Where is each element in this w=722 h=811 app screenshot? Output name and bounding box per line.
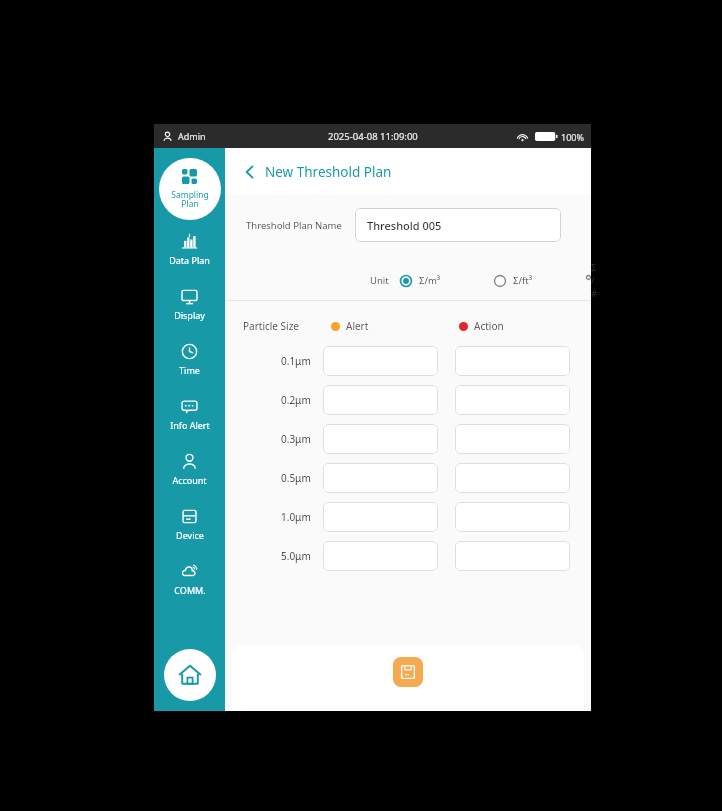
staticText: Admin xyxy=(178,130,206,142)
button[interactable]: Threshold value input xyxy=(455,424,570,454)
button[interactable]: Σ/ft³ xyxy=(494,274,532,287)
button[interactable]: Save xyxy=(393,657,423,687)
button[interactable]: Σ/# xyxy=(586,261,591,300)
staticText: Threshold Plan Name xyxy=(246,219,342,232)
staticText: Display xyxy=(174,309,205,321)
button[interactable]: Sampling Plan xyxy=(159,158,221,220)
button[interactable]: Threshold value input xyxy=(455,541,570,571)
staticText: Time xyxy=(179,364,200,376)
staticText: Device xyxy=(176,529,204,541)
button[interactable]: Info Alert xyxy=(154,395,225,434)
staticText: Alert xyxy=(346,319,369,333)
staticText: Threshold 005 xyxy=(367,218,442,233)
staticText: New Threshold Plan xyxy=(265,163,392,181)
staticText: 1.0μm xyxy=(281,510,311,524)
button[interactable]: Display xyxy=(154,285,225,324)
staticText: Σ/m³ xyxy=(419,274,441,287)
button[interactable]: Σ/m³ xyxy=(400,274,441,287)
staticText: Sampling Plan xyxy=(171,189,209,210)
staticText: 0.3μm xyxy=(281,432,311,446)
staticText: Unit xyxy=(370,274,389,287)
staticText: 5.0μm xyxy=(281,549,311,563)
button[interactable]: Threshold value input xyxy=(455,385,570,415)
button[interactable]: COMM. xyxy=(154,560,225,599)
staticText: COMM. xyxy=(174,584,206,596)
button[interactable]: Threshold value input xyxy=(455,502,570,532)
button[interactable]: Time xyxy=(154,340,225,379)
other: Back xyxy=(239,161,261,183)
button[interactable]: Threshold value input xyxy=(323,502,438,532)
staticText: Data Plan xyxy=(169,254,210,266)
button[interactable]: Threshold value input xyxy=(323,385,438,415)
staticText: Action xyxy=(474,319,504,333)
button[interactable]: Threshold value input xyxy=(455,463,570,493)
button[interactable]: Threshold 005 xyxy=(355,208,561,242)
staticText: Σ/ft³ xyxy=(513,274,532,287)
button[interactable]: Threshold value input xyxy=(455,346,570,376)
button[interactable]: Threshold value input xyxy=(323,463,438,493)
staticText: Account xyxy=(172,474,207,486)
staticText: 0.1μm xyxy=(281,354,311,368)
staticText: 2025-04-08 11:09:00 xyxy=(328,130,418,143)
staticText: Particle Size xyxy=(243,319,300,333)
button[interactable]: Data Plan xyxy=(154,230,225,269)
staticText: 100% xyxy=(561,131,584,143)
button[interactable]: Back xyxy=(239,161,392,183)
button[interactable]: Threshold value input xyxy=(323,346,438,376)
button[interactable]: Account xyxy=(154,450,225,489)
button[interactable]: Device xyxy=(154,505,225,544)
button[interactable]: Threshold value input xyxy=(323,424,438,454)
staticText: 0.2μm xyxy=(281,393,311,407)
staticText: 0.5μm xyxy=(281,471,311,485)
button[interactable]: Home xyxy=(164,649,216,701)
staticText: Info Alert xyxy=(170,419,210,431)
button[interactable]: Threshold value input xyxy=(323,541,438,571)
